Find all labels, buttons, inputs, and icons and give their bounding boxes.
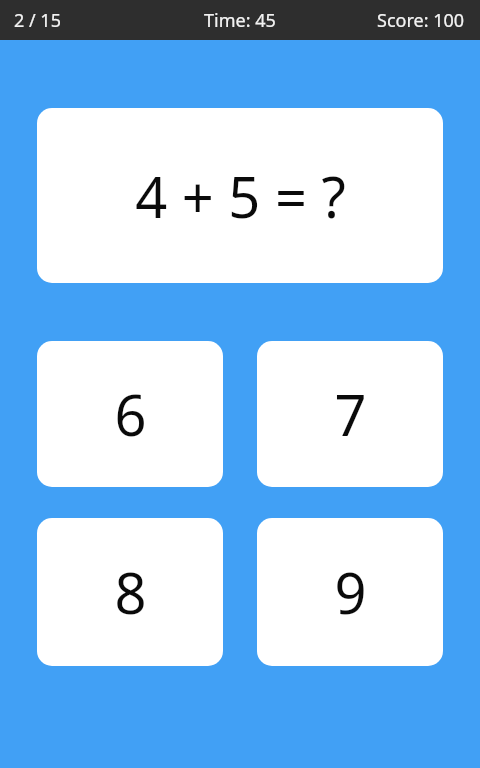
- staticText: 4 + 5 = ?: [135, 158, 346, 234]
- button[interactable]: 9: [257, 518, 443, 666]
- staticText: Time: 45: [204, 8, 276, 33]
- staticText: 7: [334, 376, 367, 452]
- button[interactable]: 8: [37, 518, 223, 666]
- button[interactable]: 7: [257, 341, 443, 487]
- staticText: 9: [334, 554, 367, 630]
- staticText: Score: 100: [377, 8, 465, 33]
- staticText: 6: [114, 376, 147, 452]
- staticText: 8: [114, 554, 147, 630]
- staticText: 2 / 15: [14, 8, 61, 33]
- button[interactable]: 6: [37, 341, 223, 487]
